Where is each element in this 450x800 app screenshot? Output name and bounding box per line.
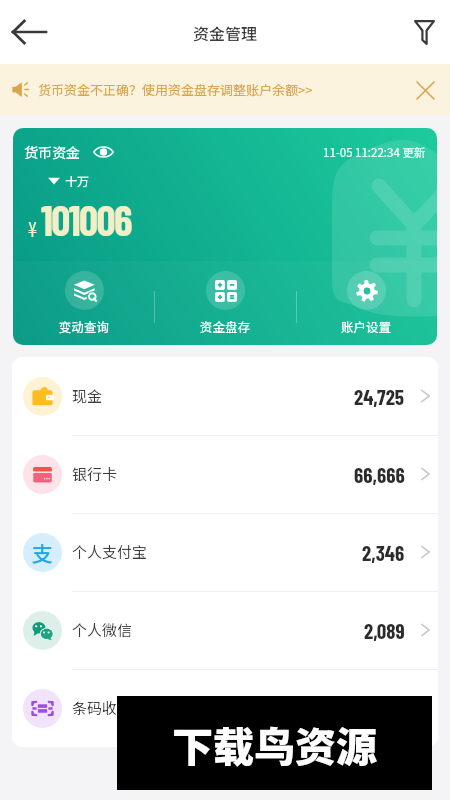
button[interactable]: 账户设置 xyxy=(296,265,437,345)
button[interactable]: 个人微信 xyxy=(12,591,438,669)
staticText: 101006 xyxy=(41,194,131,244)
staticText: ¥ xyxy=(27,216,38,241)
staticText: 资金盘存 xyxy=(200,317,251,335)
button[interactable]: 条码收款 xyxy=(12,669,438,747)
button[interactable]: 现金 xyxy=(12,357,438,435)
button[interactable]: Toggle balance visibility xyxy=(92,141,114,163)
staticText: 66,666 xyxy=(354,462,405,487)
button[interactable]: 支 xyxy=(12,513,438,591)
staticText: 2,089 xyxy=(364,618,405,643)
staticText: 个人支付宝 xyxy=(72,541,148,563)
button[interactable]: 资金盘存 xyxy=(155,265,296,345)
staticText: 个人微信 xyxy=(72,619,133,641)
staticText: 资金管理 xyxy=(193,21,258,44)
staticText: 条码收款 xyxy=(72,697,133,719)
staticText: 银行卡 xyxy=(72,463,118,485)
button[interactable]: 银行卡 xyxy=(12,435,438,513)
button[interactable]: 变动查询 xyxy=(13,265,155,345)
staticText: 2,346 xyxy=(362,540,405,565)
staticText: 货币资金不正确？使用资金盘存调整账户余额>> xyxy=(38,80,313,99)
staticText: 下载鸟资源 xyxy=(172,714,377,773)
staticText: 24,725 xyxy=(354,384,405,409)
staticText: 货币资金 xyxy=(24,142,80,162)
button[interactable]: Close xyxy=(411,76,439,104)
staticText: 十万 xyxy=(65,172,90,189)
button[interactable]: Back xyxy=(5,8,53,56)
staticText: 现金 xyxy=(72,385,103,407)
staticText: 11-05 11:22:34 更新 xyxy=(323,144,426,161)
button[interactable]: Filter xyxy=(401,9,447,55)
staticText: 变动查询 xyxy=(59,317,110,335)
staticText: 账户设置 xyxy=(341,317,392,335)
staticText: 支 xyxy=(32,538,53,568)
